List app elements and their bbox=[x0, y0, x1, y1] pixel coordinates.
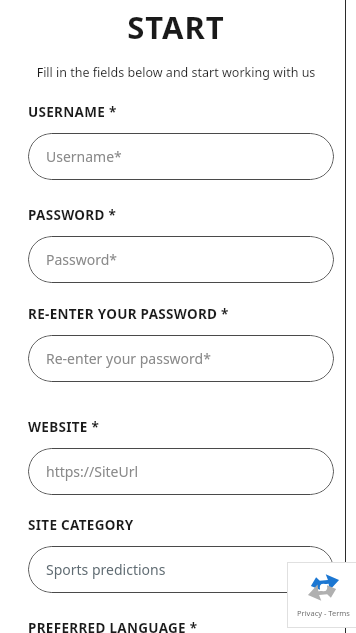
staticText: PASSWORD * bbox=[28, 206, 117, 224]
button[interactable]: Sports predictions bbox=[28, 546, 334, 593]
staticText: PREFERRED LANGUAGE * bbox=[28, 619, 198, 633]
button[interactable]: Re-enter your password* bbox=[28, 335, 334, 382]
button[interactable]: Username* bbox=[28, 133, 334, 180]
button[interactable]: Password* bbox=[28, 236, 334, 283]
staticText: https://SiteUrl bbox=[46, 462, 139, 481]
staticText: Re-enter your password* bbox=[46, 349, 211, 368]
staticText: START bbox=[23, 6, 329, 48]
button[interactable]: reCAPTCHA Privacy Terms bbox=[287, 562, 356, 628]
staticText: SITE CATEGORY bbox=[28, 516, 134, 534]
staticText: RE-ENTER YOUR PASSWORD * bbox=[28, 305, 229, 323]
staticText: WEBSITE * bbox=[28, 418, 100, 436]
staticText: Privacy - Terms bbox=[297, 608, 350, 618]
staticText: USERNAME * bbox=[28, 103, 117, 121]
button[interactable]: https://SiteUrl bbox=[28, 448, 334, 495]
staticText: Username* bbox=[46, 147, 122, 166]
staticText: Sports predictions bbox=[46, 560, 166, 579]
staticText: Fill in the fields below and start worki… bbox=[23, 64, 329, 81]
staticText: Password* bbox=[46, 250, 118, 269]
